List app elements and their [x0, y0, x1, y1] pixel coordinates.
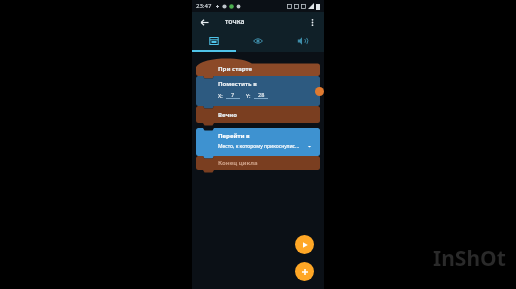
button[interactable]: Preview [236, 32, 280, 50]
staticText: Перейти в [218, 132, 250, 140]
button[interactable]: Add block [295, 262, 314, 281]
button[interactable]: Конец цикла [196, 156, 320, 170]
staticText: X: [218, 92, 223, 99]
button[interactable]: Вечно [196, 106, 320, 123]
button[interactable]: Поместить в [196, 76, 320, 106]
staticText: точка [225, 17, 245, 27]
staticText: При старте [218, 65, 252, 73]
button[interactable]: При старте [196, 56, 320, 76]
staticText: InShOt [433, 244, 506, 273]
staticText: Место, к которому прикоснулис... [218, 143, 307, 150]
button[interactable]: Back [197, 15, 211, 29]
staticText: 28 [258, 91, 265, 98]
button[interactable]: Blocks [192, 32, 236, 50]
staticText: 7 [231, 91, 235, 98]
button[interactable]: Run [295, 235, 314, 254]
staticText: 23:47 [196, 2, 212, 10]
staticText: Y: [246, 92, 251, 99]
button[interactable]: Перейти в [196, 128, 320, 156]
staticText: Вечно [218, 111, 237, 119]
staticText: Поместить в [218, 80, 257, 88]
button[interactable]: Sound [280, 32, 324, 50]
button[interactable]: More options [305, 15, 319, 29]
staticText: Конец цикла [218, 159, 258, 167]
